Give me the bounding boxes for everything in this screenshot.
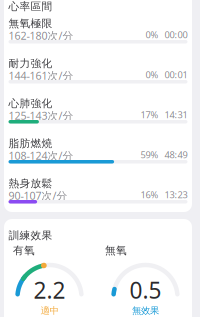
- button[interactable]: 心肺強化: [4, 97, 192, 137]
- staticText: 125-143次/分: [8, 108, 73, 123]
- staticText: 無氧: [105, 244, 127, 257]
- staticText: 162-180次/分: [8, 28, 73, 43]
- staticText: 00:00: [164, 28, 187, 41]
- staticText: 17%: [140, 108, 158, 121]
- staticText: 90-107次/分: [8, 188, 67, 203]
- staticText: 訓練效果: [8, 229, 52, 242]
- staticText: 無氧極限: [8, 17, 52, 30]
- staticText: 2.2: [33, 275, 65, 305]
- staticText: 0%: [145, 28, 158, 41]
- staticText: 有氧: [13, 244, 35, 257]
- staticText: 耐力強化: [8, 57, 52, 70]
- staticText: 16%: [140, 188, 158, 201]
- button[interactable]: 脂肪燃燒: [4, 137, 192, 177]
- staticText: 13:23: [164, 188, 187, 201]
- button[interactable]: 耐力強化: [4, 57, 192, 97]
- staticText: 48:49: [164, 148, 187, 161]
- button[interactable]: 熱身放鬆: [4, 177, 192, 217]
- staticText: 心肺強化: [8, 97, 52, 110]
- button[interactable]: 無氧極限: [4, 17, 192, 57]
- staticText: 108-124次/分: [8, 148, 73, 163]
- staticText: 脂肪燃燒: [8, 137, 52, 150]
- staticText: 144-161次/分: [8, 68, 73, 83]
- staticText: 0%: [145, 68, 158, 81]
- staticText: 00:01: [164, 68, 187, 81]
- staticText: 熱身放鬆: [8, 177, 52, 190]
- staticText: 適中: [40, 305, 58, 316]
- staticText: 59%: [140, 148, 158, 161]
- staticText: 無效果: [132, 305, 159, 316]
- staticText: 心率區間: [8, 0, 52, 13]
- staticText: 14:31: [164, 108, 187, 121]
- staticText: 0.5: [129, 275, 161, 305]
